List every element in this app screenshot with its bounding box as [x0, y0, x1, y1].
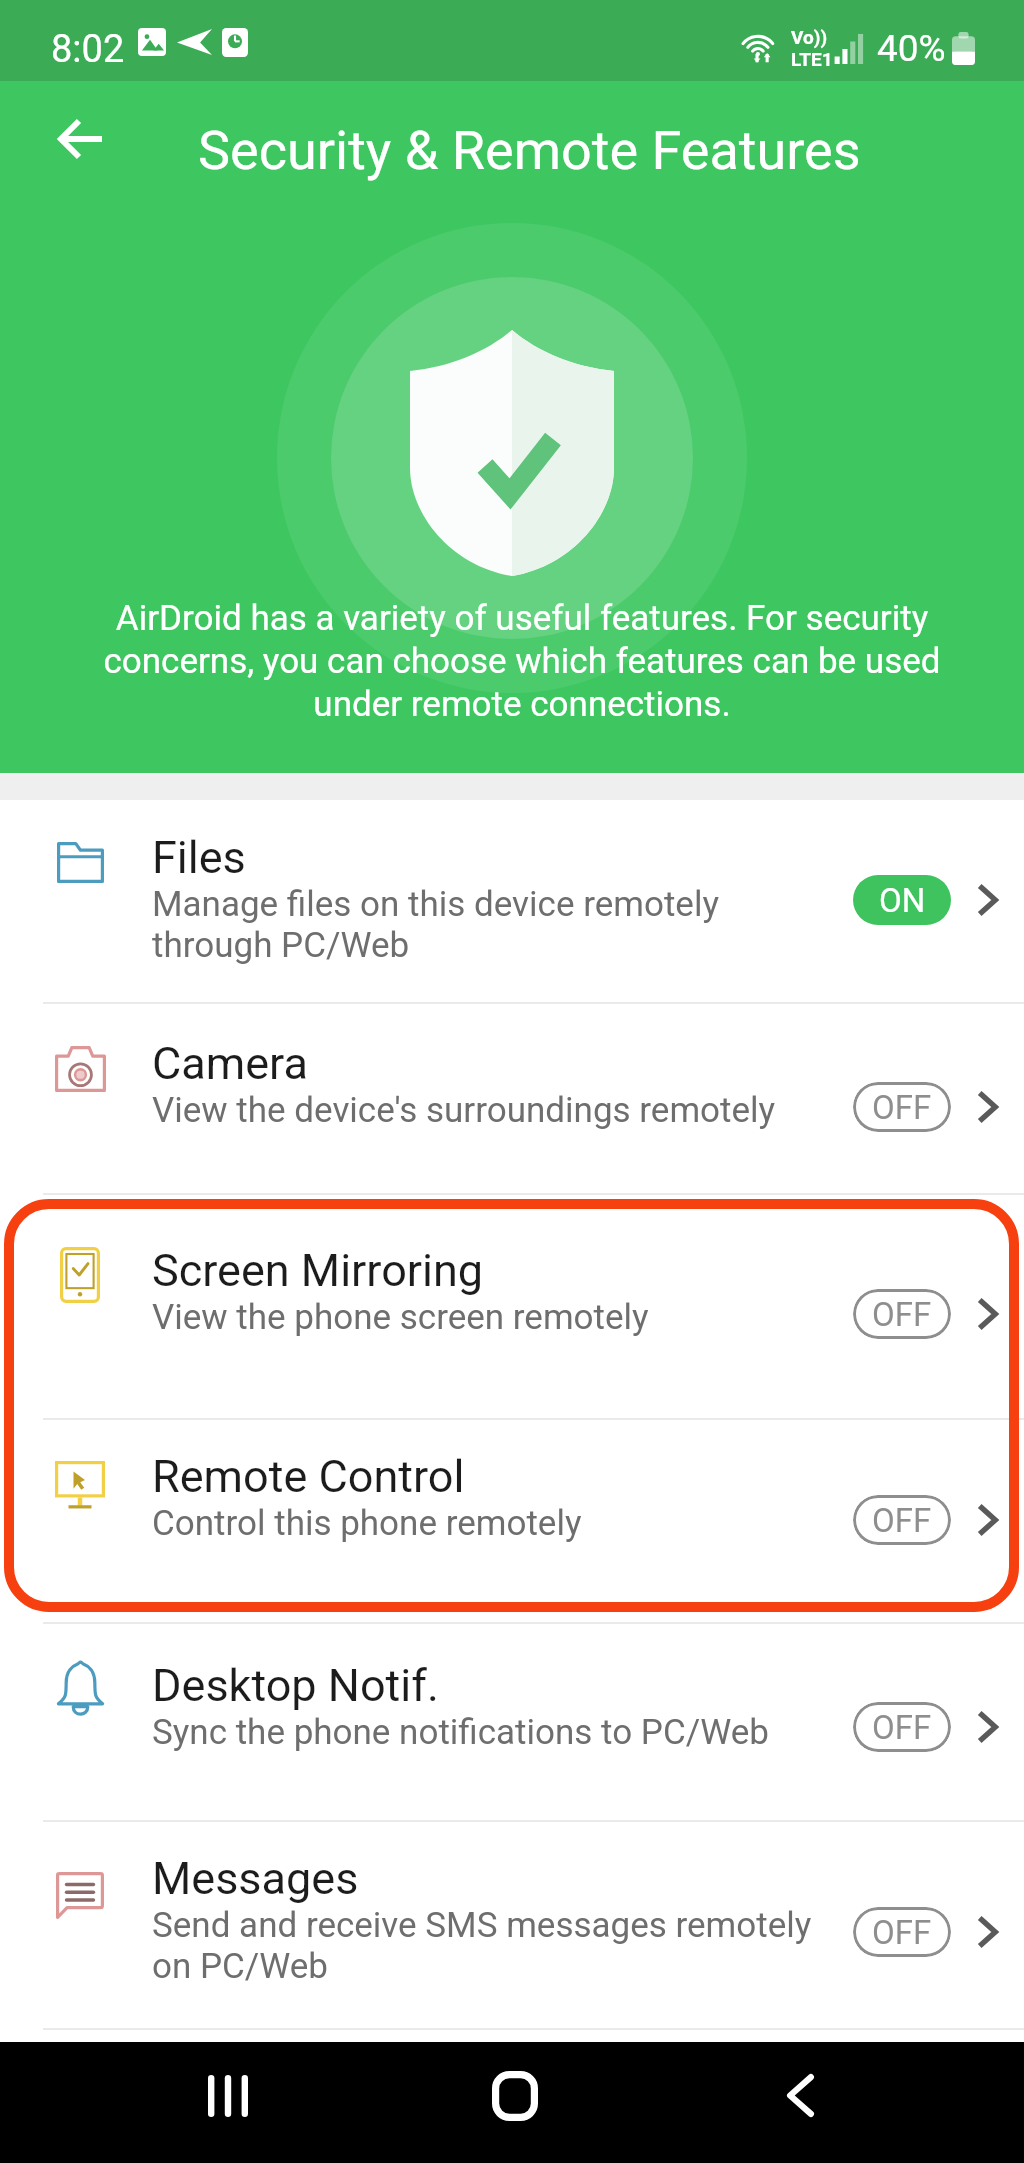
- button[interactable]: Open Files: [958, 868, 1018, 932]
- button[interactable]: Open Camera: [958, 1075, 1018, 1139]
- button[interactable]: OFF: [853, 1702, 951, 1752]
- button[interactable]: Open Screen Mirroring: [958, 1282, 1018, 1346]
- staticText: View the phone screen remotely: [152, 1297, 649, 1338]
- staticText: ON: [879, 881, 926, 920]
- staticText: OFF: [872, 1708, 932, 1747]
- button[interactable]: Files: [0, 800, 1024, 1002]
- button[interactable]: Home: [455, 2042, 575, 2161]
- staticText: Camera: [152, 1037, 308, 1090]
- button[interactable]: Desktop Notif.: [0, 1622, 1024, 1820]
- button[interactable]: Camera: [0, 1002, 1024, 1193]
- button[interactable]: OFF: [853, 1289, 951, 1339]
- staticText: 40%: [877, 27, 946, 70]
- staticText: Send and receive SMS messages remotely: [152, 1905, 812, 1946]
- button[interactable]: Open Remote Control: [958, 1488, 1018, 1552]
- staticText: AirDroid has a variety of useful feature…: [77, 598, 967, 725]
- button[interactable]: OFF: [853, 1907, 951, 1957]
- staticText: 8:02: [51, 27, 125, 72]
- staticText: Messages: [152, 1852, 359, 1905]
- staticText: OFF: [872, 1501, 932, 1540]
- staticText: Screen Mirroring: [152, 1244, 484, 1297]
- staticText: Security & Remote Features: [198, 119, 861, 182]
- button[interactable]: Back: [34, 93, 126, 185]
- staticText: Vo)): [791, 26, 828, 48]
- staticText: Remote Control: [152, 1450, 465, 1503]
- button[interactable]: Recents: [168, 2042, 288, 2161]
- staticText: View the device's surroundings remotely: [152, 1090, 776, 1131]
- staticText: Sync the phone notifications to PC/Web: [152, 1712, 769, 1753]
- staticText: LTE1: [791, 48, 833, 70]
- button[interactable]: ON: [853, 875, 951, 925]
- button[interactable]: Open Messages: [958, 1900, 1018, 1964]
- staticText: Control this phone remotely: [152, 1503, 582, 1544]
- button[interactable]: Back: [740, 2042, 860, 2161]
- staticText: OFF: [872, 1088, 932, 1127]
- button[interactable]: Open Desktop Notif.: [958, 1695, 1018, 1759]
- staticText: on PC/Web: [152, 1946, 329, 1987]
- staticText: Files: [152, 831, 246, 884]
- button[interactable]: OFF: [853, 1082, 951, 1132]
- staticText: through PC/Web: [152, 925, 410, 966]
- button[interactable]: Messages: [0, 1820, 1024, 2028]
- staticText: Manage files on this device remotely: [152, 884, 719, 925]
- button[interactable]: Remote Control: [0, 1418, 1024, 1622]
- staticText: OFF: [872, 1913, 932, 1952]
- staticText: Desktop Notif.: [152, 1659, 439, 1712]
- button[interactable]: OFF: [853, 1495, 951, 1545]
- staticText: OFF: [872, 1295, 932, 1334]
- button[interactable]: Screen Mirroring: [0, 1193, 1024, 1418]
